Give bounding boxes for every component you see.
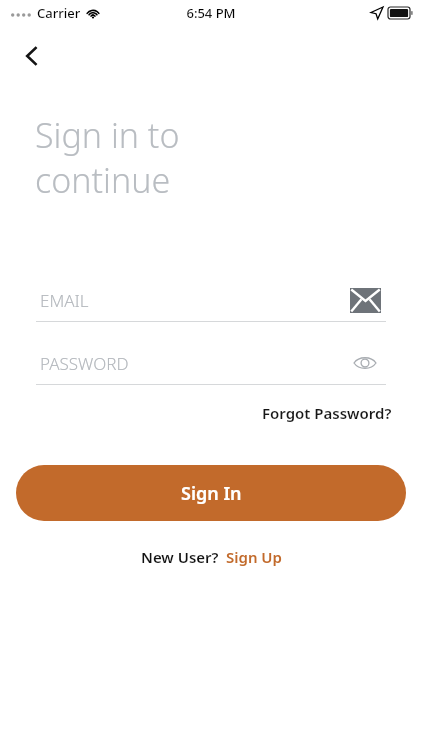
button[interactable]: Sign Up: [226, 547, 282, 567]
staticText: 6:54 PM: [186, 4, 236, 22]
button[interactable]: Forgot Password?: [258, 399, 396, 427]
staticText: Sign in to continue: [35, 112, 180, 203]
button[interactable]: Show password: [344, 342, 386, 384]
button[interactable]: Sign In: [16, 465, 406, 521]
staticText: New User?: [141, 547, 219, 567]
staticText: EMAIL: [40, 289, 344, 312]
button[interactable]: EMAIL: [36, 279, 386, 322]
staticText: PASSWORD: [40, 352, 344, 375]
staticText: Sign In: [181, 481, 242, 506]
staticText: Carrier: [37, 4, 81, 22]
staticText: Sign Up: [226, 547, 282, 567]
button[interactable]: PASSWORD: [36, 342, 386, 385]
staticText: Forgot Password?: [262, 403, 392, 423]
button[interactable]: Back: [10, 34, 54, 78]
button[interactable]: Email: [344, 279, 386, 321]
